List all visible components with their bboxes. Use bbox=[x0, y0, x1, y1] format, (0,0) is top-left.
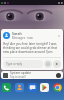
staticText: System update bbox=[10, 71, 31, 75]
button[interactable]: Messages bbox=[28, 83, 37, 92]
button[interactable]: System update bbox=[1, 71, 63, 79]
button[interactable]: Sarah bbox=[1, 29, 63, 70]
button[interactable]: Contacts bbox=[15, 83, 24, 92]
button[interactable]: Chrome bbox=[53, 83, 62, 92]
staticText: Type a reply bbox=[6, 62, 23, 66]
button[interactable]: Play Store bbox=[40, 83, 49, 92]
button[interactable]: Emoji bbox=[44, 60, 52, 68]
button[interactable]: Expand bbox=[56, 33, 61, 38]
button[interactable]: Phone bbox=[2, 83, 11, 92]
button[interactable]: Send bbox=[53, 60, 61, 68]
staticText: Tap to install bbox=[10, 75, 26, 79]
staticText: Sarah bbox=[12, 31, 22, 36]
staticText: Hey! Are you free later tonight? I was t… bbox=[3, 42, 61, 54]
button[interactable]: Type a reply bbox=[3, 60, 43, 68]
staticText: Messages · now bbox=[12, 36, 33, 40]
